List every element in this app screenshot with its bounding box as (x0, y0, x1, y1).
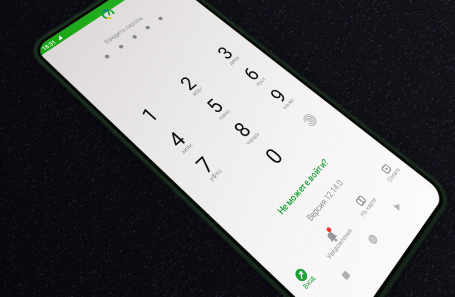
button[interactable]: Phone showing bank app PIN entry screen (0, 0, 455, 297)
